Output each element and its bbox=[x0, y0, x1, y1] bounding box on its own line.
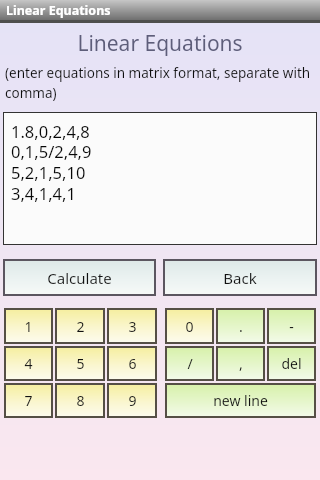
staticText: (enter equations in matrix format, separ… bbox=[5, 64, 312, 102]
staticText: 2 bbox=[76, 317, 85, 336]
staticText: 1.8,0,2,4,8 0,1,5/2,4,9 5,2,1,5,10 3,4,1… bbox=[11, 120, 92, 205]
button[interactable]: 0 bbox=[165, 308, 214, 344]
staticText: Calculate bbox=[47, 268, 112, 288]
staticText: Linear Equations bbox=[77, 29, 243, 58]
button[interactable]: . bbox=[216, 308, 265, 344]
staticText: Linear Equations bbox=[6, 2, 111, 19]
button[interactable]: 2 bbox=[55, 308, 105, 344]
staticText: 9 bbox=[128, 391, 137, 410]
button[interactable]: 1.8,0,2,4,8 0,1,5/2,4,9 5,2,1,5,10 3,4,1… bbox=[3, 112, 317, 245]
button[interactable]: 7 bbox=[4, 383, 53, 418]
button[interactable]: new line bbox=[165, 383, 316, 418]
button[interactable]: del bbox=[267, 346, 316, 381]
staticText: new line bbox=[213, 391, 268, 410]
button[interactable]: 6 bbox=[107, 346, 157, 381]
button[interactable]: 1 bbox=[4, 308, 53, 344]
staticText: 3 bbox=[128, 317, 137, 336]
button[interactable]: 4 bbox=[4, 346, 53, 381]
staticText: . bbox=[239, 317, 243, 336]
button[interactable]: 5 bbox=[55, 346, 105, 381]
staticText: del bbox=[281, 354, 302, 373]
staticText: 0 bbox=[185, 317, 194, 336]
staticText: - bbox=[289, 317, 294, 336]
staticText: Back bbox=[223, 268, 257, 288]
button[interactable]: , bbox=[216, 346, 265, 381]
staticText: 6 bbox=[128, 354, 137, 373]
button[interactable]: - bbox=[267, 308, 316, 344]
staticText: / bbox=[187, 354, 193, 373]
staticText: 7 bbox=[24, 391, 33, 410]
button[interactable]: 9 bbox=[107, 383, 157, 418]
button[interactable]: Calculate bbox=[3, 259, 156, 296]
staticText: 8 bbox=[76, 391, 85, 410]
button[interactable]: 3 bbox=[107, 308, 157, 344]
staticText: 4 bbox=[24, 354, 33, 373]
staticText: , bbox=[239, 354, 243, 373]
staticText: 1 bbox=[24, 317, 33, 336]
button[interactable]: / bbox=[165, 346, 214, 381]
button[interactable]: 8 bbox=[55, 383, 105, 418]
button[interactable]: Back bbox=[163, 259, 317, 296]
staticText: 5 bbox=[76, 354, 85, 373]
